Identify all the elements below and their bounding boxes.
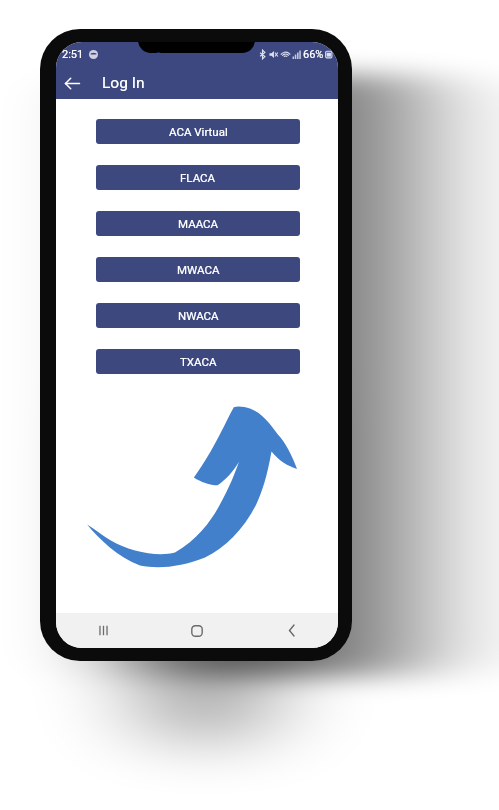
button[interactable]: Back xyxy=(61,72,83,94)
button[interactable]: MAACA xyxy=(96,211,300,236)
staticText: TXACA xyxy=(180,355,217,368)
staticText: ACA Virtual xyxy=(169,125,228,138)
button[interactable]: ACA Virtual xyxy=(96,119,300,144)
staticText: Log In xyxy=(102,74,145,92)
button[interactable]: NWACA xyxy=(96,303,300,328)
staticText: MWACA xyxy=(177,263,220,276)
staticText: FLACA xyxy=(180,171,216,184)
staticText: NWACA xyxy=(178,309,219,322)
button[interactable]: Recents xyxy=(56,613,150,648)
staticText: 2:51 xyxy=(62,48,84,61)
button[interactable]: FLACA xyxy=(96,165,300,190)
button[interactable]: Home xyxy=(150,613,244,648)
button[interactable]: MWACA xyxy=(96,257,300,282)
staticText: 66% xyxy=(303,48,324,61)
button[interactable]: TXACA xyxy=(96,349,300,374)
button[interactable]: Back xyxy=(244,613,338,648)
staticText: MAACA xyxy=(178,217,219,230)
